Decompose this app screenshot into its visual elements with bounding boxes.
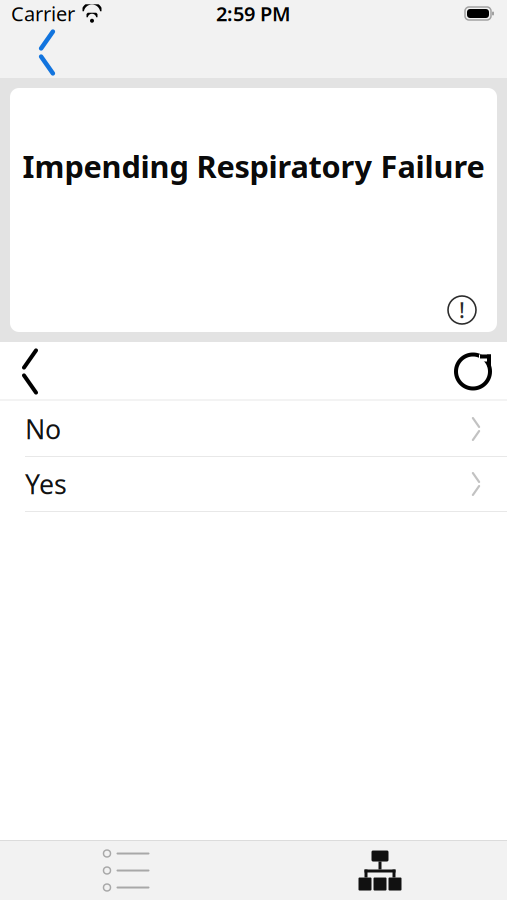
button[interactable]: Yes [0,457,507,512]
button[interactable]: Algorithm [253,841,507,900]
staticText: Yes [25,466,67,502]
button[interactable]: Back [0,343,60,399]
button[interactable]: Back [0,27,76,77]
staticText: ! [459,296,465,324]
staticText: 2:59 PM [216,0,291,27]
button[interactable]: No [0,402,507,457]
button[interactable]: List [0,841,253,900]
button[interactable]: Information [442,290,482,330]
staticText: No [25,411,61,447]
staticText: Impending Respiratory Failure [22,146,484,186]
button[interactable]: Restart [441,343,505,399]
staticText: Carrier [11,0,75,27]
